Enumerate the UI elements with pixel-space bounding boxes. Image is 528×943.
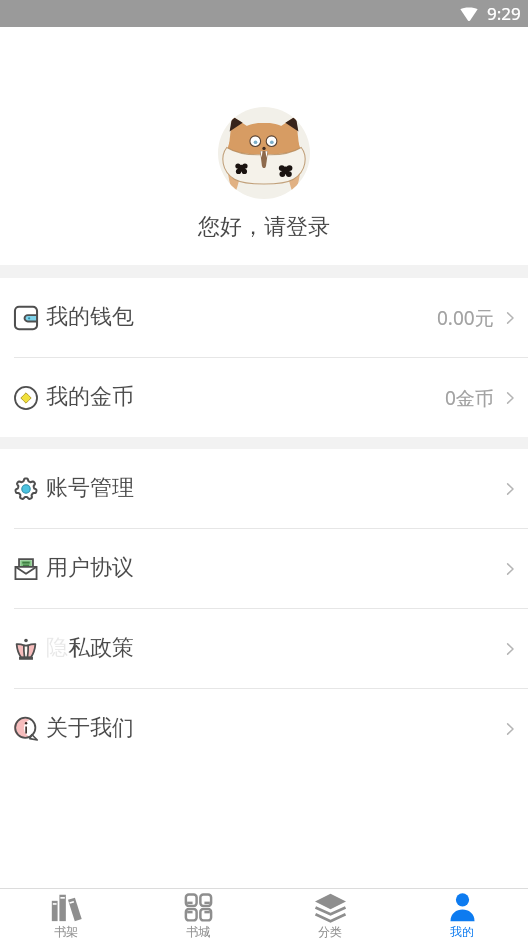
button[interactable]: 书城 xyxy=(132,889,264,943)
staticText: 书城 xyxy=(186,924,210,939)
staticText: 我的 xyxy=(450,924,474,939)
staticText: 隐 xyxy=(46,634,68,662)
button[interactable]: 书架 xyxy=(0,889,132,943)
staticText: 9:29 xyxy=(487,2,521,25)
staticText: 我的钱包 xyxy=(46,303,134,331)
button[interactable]: User avatar xyxy=(218,107,310,199)
staticText: 关于我们 xyxy=(46,714,134,742)
staticText: 0金币 xyxy=(445,385,494,411)
button[interactable]: 用户协议 xyxy=(0,529,528,608)
staticText: 分类 xyxy=(318,924,342,939)
button[interactable]: 我的钱包 xyxy=(0,278,528,357)
button[interactable]: 分类 xyxy=(264,889,396,943)
button[interactable]: 隐 xyxy=(0,609,528,688)
staticText: 私政策 xyxy=(68,634,134,662)
staticText: 0.00元 xyxy=(437,305,494,331)
staticText: 您好，请登录 xyxy=(198,213,330,241)
button[interactable]: 我的金币 xyxy=(0,358,528,437)
button[interactable]: 账号管理 xyxy=(0,449,528,528)
staticText: 用户协议 xyxy=(46,554,134,582)
staticText: 书架 xyxy=(54,924,78,939)
staticText: 我的金币 xyxy=(46,383,134,411)
button[interactable]: 关于我们 xyxy=(0,689,528,768)
button[interactable]: 我的 xyxy=(396,889,528,943)
staticText: 账号管理 xyxy=(46,474,134,502)
